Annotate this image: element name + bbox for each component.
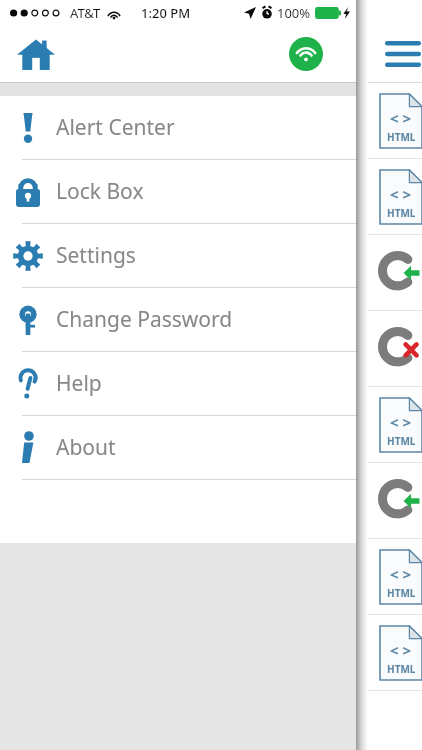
- button[interactable]: Home: [8, 26, 64, 82]
- staticText: < >: [390, 108, 412, 128]
- staticText: Alert Center: [56, 113, 175, 142]
- button[interactable]: < >: [368, 387, 422, 463]
- button[interactable]: Settings: [0, 224, 356, 287]
- button[interactable]: [368, 235, 422, 311]
- button[interactable]: < >: [368, 83, 422, 159]
- button[interactable]: < >: [368, 159, 422, 235]
- staticText: HTML: [387, 586, 416, 600]
- staticText: HTML: [387, 662, 416, 676]
- staticText: AT&T: [70, 4, 101, 22]
- button[interactable]: [368, 311, 422, 387]
- staticText: < >: [390, 184, 412, 204]
- staticText: 100%: [277, 4, 311, 22]
- button[interactable]: Alert Center: [0, 96, 356, 159]
- button[interactable]: [368, 463, 422, 539]
- button[interactable]: < >: [368, 539, 422, 615]
- staticText: HTML: [387, 130, 416, 144]
- button[interactable]: Lock Box: [0, 160, 356, 223]
- staticText: Lock Box: [56, 177, 144, 206]
- staticText: About: [56, 433, 116, 462]
- button[interactable]: < >: [368, 615, 422, 691]
- button[interactable]: About: [0, 416, 356, 479]
- staticText: < >: [390, 412, 412, 432]
- button[interactable]: Help: [0, 352, 356, 415]
- staticText: < >: [390, 640, 412, 660]
- button[interactable]: Open menu: [377, 28, 422, 80]
- staticText: 1:20 PM: [141, 4, 191, 22]
- button[interactable]: Connection status: [282, 30, 330, 78]
- staticText: Settings: [56, 241, 136, 270]
- staticText: HTML: [387, 434, 416, 448]
- button[interactable]: Change Password: [0, 288, 356, 351]
- staticText: Change Password: [56, 305, 233, 334]
- staticText: Help: [56, 369, 102, 398]
- staticText: < >: [390, 564, 412, 584]
- staticText: HTML: [387, 206, 416, 220]
